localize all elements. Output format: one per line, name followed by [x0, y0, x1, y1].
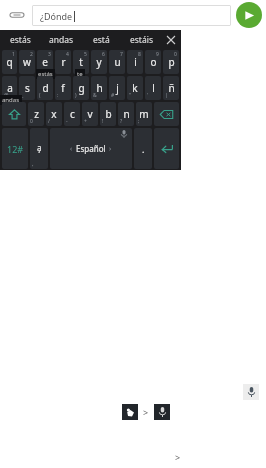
button[interactable]: Voice input — [154, 404, 170, 420]
button[interactable]: h — [91, 76, 107, 100]
staticText: ; — [138, 118, 140, 125]
button[interactable]: Enter — [154, 128, 179, 169]
button[interactable]: Backspace — [154, 102, 179, 126]
button[interactable]: l — [145, 76, 161, 100]
button[interactable]: estás — [0, 30, 41, 49]
staticText: k — [132, 81, 138, 95]
staticText: # — [111, 92, 115, 99]
button[interactable]: z — [28, 102, 44, 126]
button[interactable]: j — [109, 76, 125, 100]
staticText: > — [175, 451, 181, 463]
staticText: Español — [76, 143, 106, 154]
button[interactable]: i — [127, 50, 143, 74]
button[interactable]: m — [136, 102, 152, 126]
staticText: s — [25, 81, 30, 95]
button[interactable]: Microphone — [243, 384, 259, 400]
staticText: ) — [75, 92, 77, 99]
staticText: a̧ — [37, 142, 42, 153]
button[interactable]: p — [163, 50, 179, 74]
staticText: h — [96, 81, 103, 95]
staticText: g — [78, 81, 85, 95]
staticText: > — [143, 406, 149, 418]
staticText: / — [48, 118, 50, 125]
button[interactable]: . — [134, 128, 152, 169]
button[interactable]: a — [2, 76, 17, 100]
other: Backspace — [154, 102, 179, 126]
button[interactable]: y — [91, 50, 107, 74]
staticText: . — [142, 143, 145, 155]
button[interactable]: ‹ — [50, 128, 132, 169]
button[interactable]: Shift — [2, 102, 26, 126]
button[interactable]: estáis — [121, 30, 161, 49]
staticText: f — [61, 81, 65, 95]
staticText: e — [42, 55, 48, 69]
staticText: te — [77, 70, 83, 78]
button[interactable]: f — [55, 76, 71, 100]
staticText: x — [51, 107, 57, 121]
button[interactable]: k — [127, 76, 143, 100]
button[interactable]: n — [118, 102, 134, 126]
button[interactable]: está — [81, 30, 121, 49]
staticText: a — [7, 81, 13, 95]
other: Shift — [2, 102, 26, 126]
staticText: 1 — [12, 51, 15, 58]
staticText: está — [93, 34, 110, 46]
staticText: , — [32, 160, 34, 168]
staticText: 4 — [66, 51, 69, 58]
staticText: l — [152, 81, 155, 95]
button[interactable]: a̧ — [30, 128, 48, 169]
button[interactable]: b — [100, 102, 116, 126]
staticText: | — [165, 92, 168, 99]
button[interactable]: g — [73, 76, 89, 100]
staticText: c — [70, 107, 75, 121]
button[interactable]: ñ — [163, 76, 179, 100]
staticText: 3 — [48, 51, 51, 58]
staticText: 8 — [138, 51, 141, 58]
button[interactable]: s — [19, 76, 35, 100]
staticText: estáis — [130, 34, 153, 46]
staticText: ' — [147, 92, 149, 99]
staticText: t — [79, 55, 83, 69]
staticText: v — [87, 107, 93, 121]
staticText: j — [116, 81, 119, 95]
button[interactable]: c — [64, 102, 80, 126]
button[interactable]: ¿Dónde — [32, 5, 231, 26]
button[interactable]: Attach — [6, 4, 28, 26]
button[interactable]: q — [2, 50, 17, 74]
button[interactable]: t — [73, 50, 89, 74]
staticText: - — [66, 118, 68, 125]
button[interactable]: Send — [236, 2, 262, 28]
staticText: w — [23, 55, 31, 69]
staticText: 0 — [174, 51, 177, 58]
staticText: andas — [49, 34, 74, 46]
button[interactable]: Close suggestions — [161, 30, 181, 49]
button[interactable]: r — [55, 50, 71, 74]
button[interactable]: v — [82, 102, 98, 126]
staticText: andas — [2, 96, 20, 104]
button[interactable]: o — [145, 50, 161, 74]
staticText: n — [123, 107, 130, 121]
staticText: ? — [120, 118, 123, 125]
button[interactable]: d — [37, 76, 53, 100]
button[interactable]: u — [109, 50, 125, 74]
button[interactable]: andas — [41, 30, 81, 49]
button[interactable]: w — [19, 50, 35, 74]
staticText: estás — [10, 34, 31, 46]
staticText: z — [34, 107, 39, 121]
staticText: 12# — [7, 143, 24, 155]
staticText: _ — [21, 92, 24, 99]
staticText: m — [139, 107, 149, 121]
staticText: 0 — [30, 118, 33, 125]
other: Enter — [154, 128, 179, 169]
staticText: q — [6, 55, 13, 69]
button[interactable]: 12# — [2, 128, 28, 169]
button[interactable]: e — [37, 50, 53, 74]
button[interactable]: x — [46, 102, 62, 126]
staticText: ( — [39, 92, 41, 99]
staticText: + — [84, 118, 87, 125]
staticText: ! — [102, 118, 104, 125]
staticText: 6 — [102, 51, 105, 58]
staticText: 7 — [120, 51, 123, 58]
button[interactable]: Tap — [122, 404, 138, 420]
staticText: d — [42, 81, 49, 95]
